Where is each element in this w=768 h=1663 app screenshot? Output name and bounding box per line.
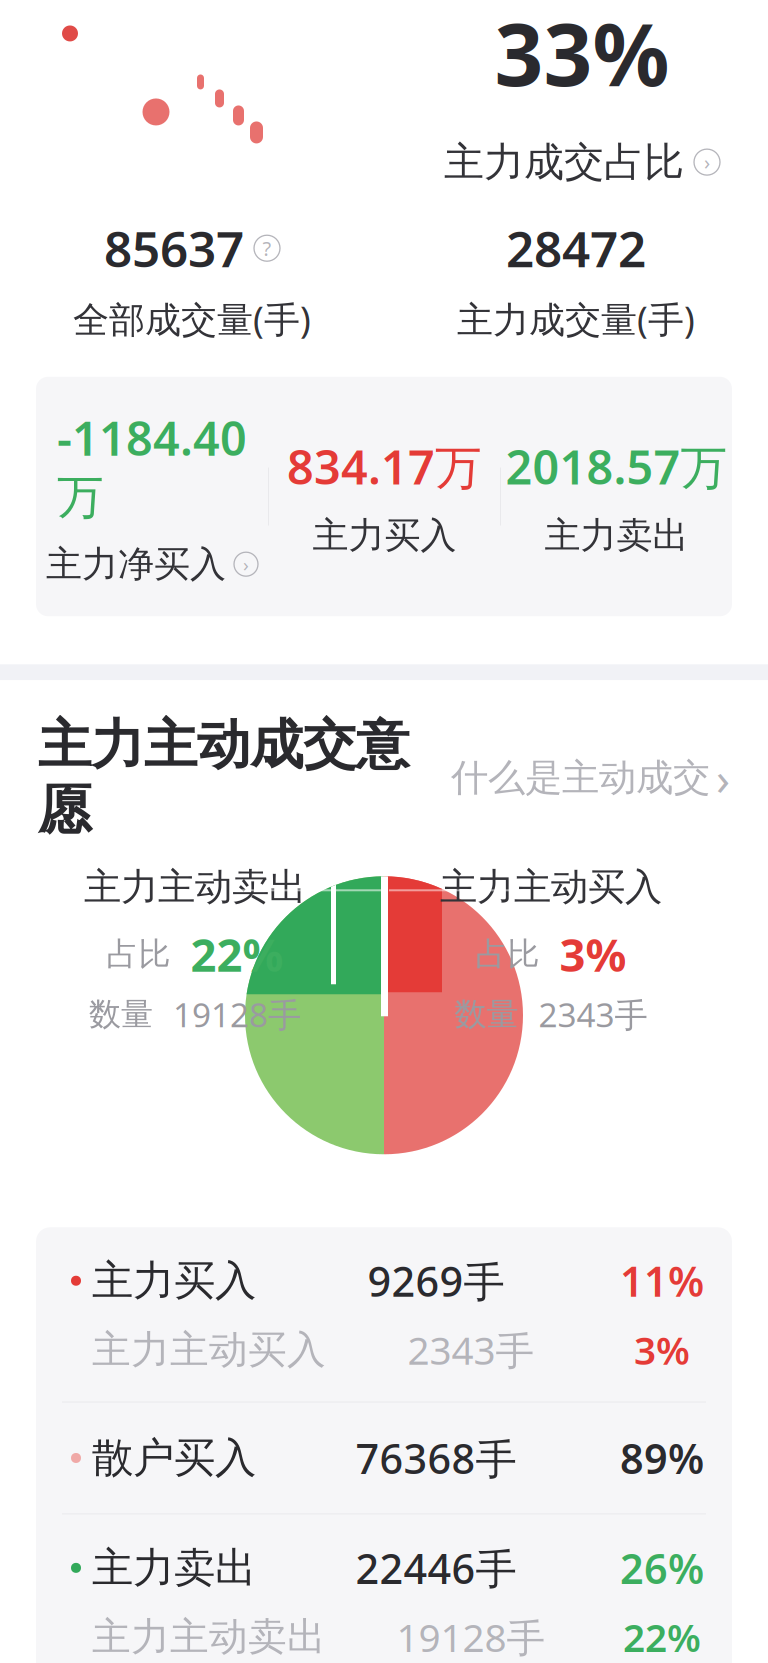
staticText: 占比: [106, 934, 170, 974]
staticText: 9269手: [367, 1253, 504, 1308]
button[interactable]: -1184.40万: [36, 407, 268, 586]
staticText: 散户买入: [92, 1433, 256, 1483]
staticText: 19128手: [173, 992, 301, 1036]
staticText: 11%: [620, 1253, 704, 1308]
staticText: 33%: [494, 0, 669, 109]
staticText: 85637: [104, 215, 244, 281]
staticText: 主力主动卖出: [92, 1613, 326, 1661]
staticText: 主力主动买入: [92, 1326, 326, 1374]
button[interactable]: 散户买入: [60, 1430, 708, 1485]
button[interactable]: 什么是主动成交: [451, 748, 730, 808]
staticText: 19128手: [396, 1611, 545, 1663]
staticText: ›: [704, 149, 710, 175]
staticText: 什么是主动成交: [451, 755, 710, 801]
staticText: 主力成交占比: [444, 137, 684, 187]
staticText: 3%: [634, 1324, 690, 1375]
staticText: 主力净买入: [46, 542, 226, 586]
button[interactable]: 主力成交占比: [444, 137, 720, 187]
staticText: 主力卖出: [544, 513, 688, 558]
staticText: 76368手: [355, 1430, 516, 1485]
staticText: 2343手: [538, 992, 647, 1036]
staticText: 占比: [475, 934, 539, 974]
staticText: 主力主动买入: [440, 864, 662, 910]
staticText: ›: [716, 748, 730, 808]
staticText: 2343手: [407, 1324, 534, 1375]
button[interactable]: 主力买入: [60, 1253, 708, 1375]
staticText: 数量: [89, 995, 153, 1034]
staticText: 22%: [623, 1611, 701, 1663]
staticText: 22446手: [355, 1540, 516, 1595]
button[interactable]: 主力卖出: [60, 1540, 708, 1663]
staticText: 22%: [190, 924, 283, 984]
staticText: 2018.57万: [505, 435, 727, 497]
staticText: 数量: [454, 995, 518, 1034]
staticText: 89%: [620, 1430, 704, 1485]
staticText: ›: [243, 552, 249, 577]
staticText: 主力主动成交意愿: [38, 712, 409, 843]
staticText: 834.17万: [287, 435, 482, 497]
staticText: ?: [262, 235, 271, 261]
staticText: 全部成交量(手): [73, 295, 311, 343]
staticText: 主力买入: [312, 513, 456, 558]
staticText: 26%: [620, 1540, 704, 1595]
staticText: 主力主动卖出: [84, 864, 306, 910]
staticText: 3%: [559, 924, 626, 984]
staticText: 主力成交量(手): [457, 295, 695, 343]
staticText: 主力卖出: [92, 1542, 256, 1593]
staticText: -1184.40万: [57, 407, 247, 526]
staticText: 主力买入: [92, 1255, 256, 1306]
staticText: 28472: [506, 215, 646, 281]
